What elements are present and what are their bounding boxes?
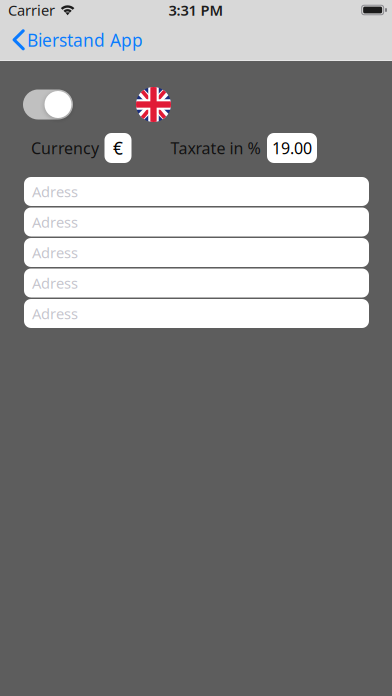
button[interactable]: 19.00 xyxy=(267,133,317,163)
staticText: Carrier xyxy=(8,0,55,20)
staticText: Adress xyxy=(32,273,78,293)
staticText: Adress xyxy=(32,212,78,232)
staticText: Currency xyxy=(31,137,99,159)
staticText: Taxrate in % xyxy=(170,137,260,159)
staticText: 19.00 xyxy=(272,137,312,159)
button[interactable]: Adress xyxy=(24,207,369,236)
button[interactable]: Adress xyxy=(24,299,369,328)
staticText: € xyxy=(113,136,123,159)
staticText: 3:31 PM xyxy=(168,0,223,20)
button[interactable]: Adress xyxy=(24,177,369,206)
staticText: Adress xyxy=(32,243,78,262)
button[interactable]: Toggle xyxy=(23,89,73,119)
button[interactable]: Adress xyxy=(24,268,369,297)
button[interactable]: Bierstand App xyxy=(0,20,153,60)
button[interactable]: Adress xyxy=(24,238,369,267)
staticText: Adress xyxy=(32,182,78,201)
staticText: Bierstand App xyxy=(27,28,143,51)
button[interactable]: € xyxy=(104,133,131,163)
staticText: Adress xyxy=(32,304,78,323)
